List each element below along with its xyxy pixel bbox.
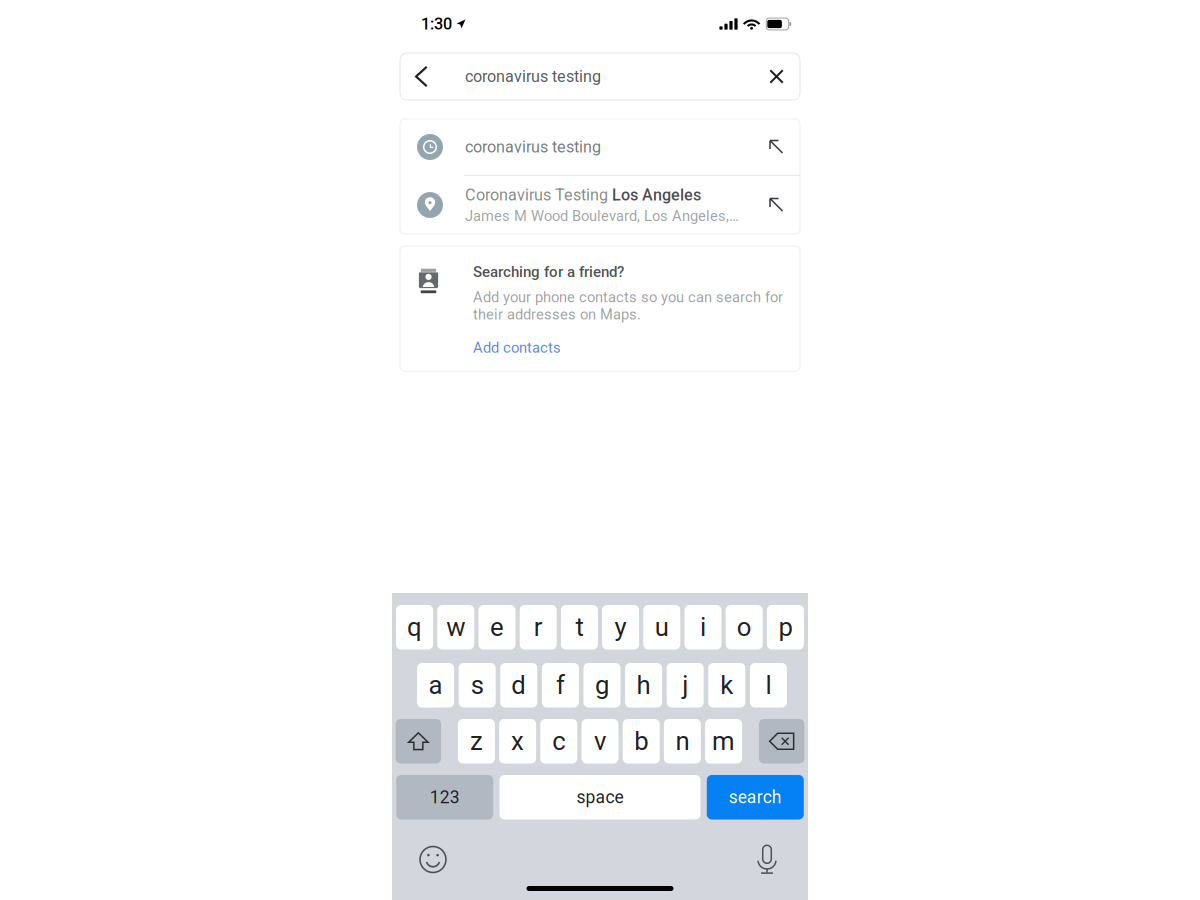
button[interactable]: g [583, 663, 620, 707]
staticText: James M Wood Boulevard, Los Angeles,… [465, 207, 739, 225]
button[interactable]: x [499, 719, 536, 763]
staticText: Searching for a friend? [473, 263, 624, 281]
staticText: z [470, 726, 483, 756]
staticText: w [446, 612, 465, 642]
button[interactable]: z [458, 719, 495, 763]
button[interactable]: y [602, 605, 639, 649]
staticText: q [407, 612, 422, 642]
button[interactable]: j [667, 663, 704, 707]
staticText: i [700, 612, 706, 642]
staticText: coronavirus testing [465, 67, 601, 86]
button[interactable]: b [623, 719, 660, 763]
button[interactable]: i [684, 605, 721, 649]
button[interactable]: a [417, 663, 454, 707]
staticText: Coronavirus Testing [465, 185, 612, 204]
staticText: c [552, 726, 565, 756]
staticText: u [655, 612, 669, 642]
button[interactable]: o [726, 605, 763, 649]
staticText: l [765, 670, 771, 700]
staticText: their addresses on Maps. [473, 306, 641, 323]
staticText: Los Angeles [612, 185, 701, 204]
staticText: d [511, 670, 526, 700]
staticText: h [637, 670, 651, 700]
staticText: n [675, 726, 689, 756]
button[interactable]: Clear search [753, 53, 800, 100]
button[interactable]: l [750, 663, 787, 707]
staticText: o [737, 612, 752, 642]
staticText: e [490, 612, 504, 642]
button[interactable]: t [561, 605, 598, 649]
button[interactable]: space [499, 775, 700, 819]
button[interactable]: h [625, 663, 662, 707]
button[interactable]: q [396, 605, 433, 649]
staticText: f [556, 670, 565, 700]
staticText: y [615, 612, 627, 642]
staticText: m [712, 726, 735, 756]
button[interactable]: e [478, 605, 515, 649]
button[interactable]: Add contacts [473, 339, 561, 356]
button[interactable]: search [707, 775, 804, 819]
staticText: b [634, 726, 648, 756]
staticText: 1:30 [421, 14, 452, 34]
staticText: space [576, 787, 623, 807]
staticText: k [720, 670, 733, 700]
staticText: x [511, 726, 524, 756]
staticText: v [594, 726, 606, 756]
staticText: Add contacts [473, 339, 561, 356]
button[interactable]: Shift [396, 719, 441, 763]
button[interactable]: v [581, 719, 618, 763]
button[interactable]: p [767, 605, 804, 649]
button[interactable]: Back [400, 53, 443, 100]
button[interactable]: n [664, 719, 701, 763]
button[interactable]: Dictation [745, 844, 789, 874]
button[interactable]: coronavirus testing [400, 119, 800, 175]
staticText: s [471, 670, 484, 700]
button[interactable]: 123 [396, 775, 493, 819]
button[interactable]: f [542, 663, 579, 707]
button[interactable]: k [708, 663, 745, 707]
staticText: a [429, 670, 443, 700]
staticText: coronavirus testing [465, 137, 601, 156]
button[interactable]: Coronavirus Testing [400, 176, 800, 234]
staticText: j [682, 670, 688, 700]
staticText: 123 [430, 787, 460, 807]
staticText: g [595, 670, 609, 700]
staticText: p [778, 612, 792, 642]
button[interactable]: c [540, 719, 577, 763]
staticText: r [534, 612, 543, 642]
staticText: t [575, 612, 583, 642]
button[interactable]: m [705, 719, 742, 763]
staticText: search [729, 787, 782, 807]
button[interactable]: u [643, 605, 680, 649]
button[interactable]: Delete [759, 719, 804, 763]
button[interactable]: Emoji [411, 844, 455, 874]
button[interactable]: w [437, 605, 474, 649]
button[interactable]: r [520, 605, 557, 649]
button[interactable]: s [459, 663, 496, 707]
staticText: Add your phone contacts so you can searc… [473, 289, 783, 306]
button[interactable]: d [500, 663, 537, 707]
